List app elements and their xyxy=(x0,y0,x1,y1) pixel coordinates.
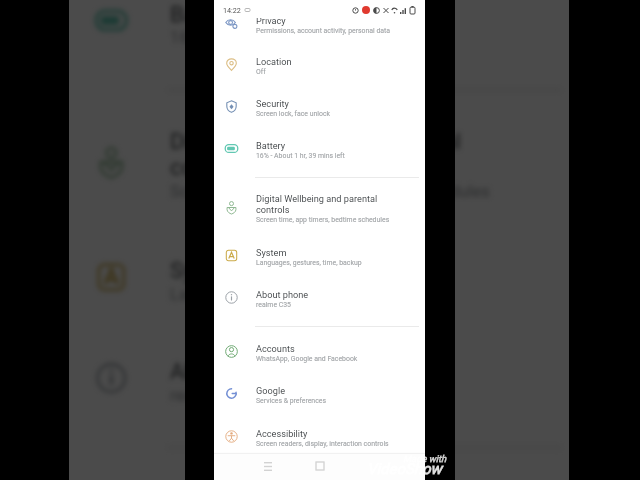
button[interactable]: Battery xyxy=(214,132,425,168)
staticText: Location xyxy=(256,56,292,67)
staticText: Privacy xyxy=(256,15,286,26)
button[interactable]: About phone xyxy=(69,338,569,425)
button[interactable]: About phone xyxy=(214,281,425,317)
staticText: Digital Wellbeing and parental xyxy=(256,193,378,204)
staticText: 16% - About 1 hr, 39 mins left xyxy=(170,29,384,48)
button[interactable]: Location xyxy=(214,48,425,84)
button[interactable]: Privacy xyxy=(214,7,425,43)
staticText: Permissions, account activity, personal … xyxy=(256,27,391,35)
staticText: Made with xyxy=(403,453,447,464)
staticText: controls xyxy=(170,154,252,180)
staticText: Screen lock, face unlock xyxy=(256,110,330,118)
staticText: VideoShow xyxy=(367,460,442,477)
staticText: Digital Wellbeing and parental xyxy=(170,127,463,154)
button[interactable]: Recent apps xyxy=(259,457,277,475)
staticText: Screen time, app timers, bedtime schedul… xyxy=(256,216,390,224)
button[interactable]: Digital Wellbeing and parental xyxy=(69,108,569,223)
button[interactable]: Home xyxy=(311,457,329,475)
staticText: About phone xyxy=(256,289,309,300)
staticText: About phone xyxy=(170,358,297,384)
staticText: Languages, gestures, time, backup xyxy=(256,259,362,267)
button[interactable]: Accounts xyxy=(214,335,425,371)
button[interactable]: Battery xyxy=(69,0,569,67)
staticText: Off xyxy=(256,68,266,76)
staticText: Battery xyxy=(256,140,286,151)
staticText: 16% - About 1 hr, 39 mins left xyxy=(256,152,345,160)
button[interactable]: Accounts xyxy=(69,468,569,480)
button[interactable]: System xyxy=(214,239,425,275)
staticText: controls xyxy=(256,204,290,215)
button[interactable]: Digital Wellbeing and parental xyxy=(214,185,425,233)
staticText: Screen readers, display, interaction con… xyxy=(256,440,389,448)
button[interactable]: Google xyxy=(214,377,425,413)
staticText: realme C35 xyxy=(256,301,291,309)
staticText: Services & preferences xyxy=(256,397,326,405)
button[interactable]: System xyxy=(69,238,569,324)
staticText: Battery xyxy=(170,0,242,26)
staticText: System xyxy=(170,257,244,283)
staticText: System xyxy=(256,247,287,258)
staticText: 14:22 xyxy=(223,6,241,14)
staticText: Accessibility xyxy=(256,428,308,439)
button[interactable]: Security xyxy=(214,90,425,126)
staticText: Google xyxy=(256,385,286,396)
staticText: realme C35 xyxy=(170,386,254,406)
button[interactable]: Accessibility xyxy=(214,420,425,456)
staticText: Languages, gestures, time, backup xyxy=(170,286,424,305)
staticText: WhatsApp, Google and Facebook xyxy=(256,355,358,363)
staticText: Accounts xyxy=(256,343,295,354)
staticText: Security xyxy=(256,98,289,109)
staticText: Screen time, app timers, bedtime schedul… xyxy=(170,182,492,202)
